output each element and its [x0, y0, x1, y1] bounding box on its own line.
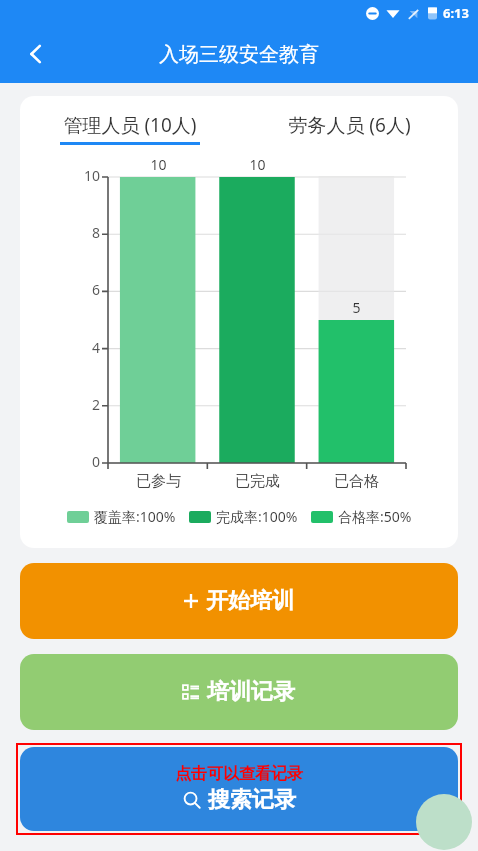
staticText: 点击可以查看记录	[175, 764, 303, 784]
button[interactable]: Back	[14, 32, 58, 76]
staticText: 10	[83, 166, 100, 185]
staticText: 10	[150, 155, 167, 174]
staticText: 8	[91, 223, 100, 242]
button[interactable]: Add	[416, 794, 472, 850]
staticText: 0	[91, 452, 100, 471]
staticText: 完成率:100%	[216, 507, 298, 526]
staticText: 4	[91, 338, 100, 357]
staticText: 合格率:50%	[338, 507, 412, 526]
staticText: 5	[352, 298, 361, 317]
staticText: 搜索记录	[208, 786, 296, 814]
staticText: 入场三级安全教育	[159, 42, 319, 67]
staticText: 劳务人员 (6人)	[288, 112, 411, 138]
staticText: 6:13	[443, 4, 469, 22]
staticText: 覆盖率:100%	[94, 507, 176, 526]
staticText: 2	[91, 395, 100, 414]
staticText: 10	[249, 155, 266, 174]
staticText: 管理人员 (10人)	[63, 112, 197, 138]
button[interactable]: 点击可以查看记录	[20, 747, 458, 831]
staticText: 已完成	[235, 472, 280, 491]
staticText: 培训记录	[207, 678, 295, 706]
button[interactable]: 管理人员 (10人)	[20, 112, 239, 145]
button[interactable]: 培训记录	[20, 654, 458, 730]
button[interactable]: 劳务人员 (6人)	[239, 112, 458, 145]
staticText: 开始培训	[206, 587, 294, 615]
staticText: 已合格	[334, 472, 379, 491]
staticText: 6	[91, 280, 100, 299]
button[interactable]: 开始培训	[20, 563, 458, 639]
staticText: 已参与	[136, 472, 181, 491]
